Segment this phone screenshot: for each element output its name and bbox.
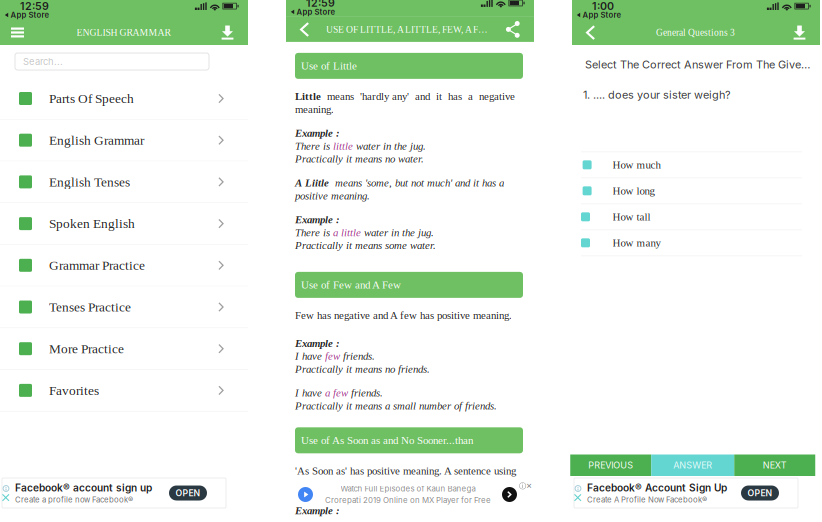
staticText: Little [295, 90, 321, 102]
staticText: OPEN [175, 488, 200, 498]
button[interactable]: More Practice [0, 328, 248, 370]
staticText: 12:59 [20, 0, 49, 12]
staticText: More Practice [49, 341, 124, 356]
staticText: App Store [582, 10, 621, 20]
staticText: Favorites [49, 383, 99, 398]
staticText: NEXT [763, 460, 787, 471]
staticText: Few has negative and A few has positive … [295, 309, 512, 321]
staticText: English Tenses [49, 174, 130, 189]
staticText: little [333, 140, 353, 152]
staticText: means 'some, but not much' and it has a [329, 177, 504, 189]
staticText: 1. .... does your sister weigh? [583, 88, 731, 101]
staticText: Example : [295, 337, 340, 349]
button[interactable]: Download [215, 20, 241, 45]
staticText: English Grammar [49, 133, 144, 148]
button[interactable]: Grammar Practice [0, 245, 248, 286]
button[interactable]: PREVIOUS [570, 454, 651, 476]
button[interactable]: English Tenses [0, 161, 248, 203]
staticText: Tenses Practice [49, 300, 131, 314]
staticText: water in the jug. [361, 227, 434, 239]
staticText: Use of Few and A Few [301, 279, 401, 291]
staticText: Search... [23, 56, 63, 67]
staticText: Spoken English [49, 216, 135, 231]
staticText: Practically it means no friends. [295, 363, 430, 375]
staticText: Practically it means some water. [295, 239, 436, 251]
staticText: Use of As Soon as and No Sooner...than [301, 434, 473, 446]
staticText: OPEN [747, 488, 772, 498]
staticText: How much [613, 159, 661, 171]
button[interactable]: Back [292, 17, 318, 42]
button[interactable]: Download [787, 20, 813, 45]
staticText: How many [613, 237, 661, 249]
staticText: USE OF LITTLE, A LITTLE, FEW, A FEW.... [326, 24, 493, 35]
button[interactable]: How long [572, 177, 820, 203]
staticText: Create A Profile Now Facebook® [587, 495, 707, 504]
staticText: 'As Soon as' has positive meaning. A sen… [295, 465, 516, 477]
staticText: ✕ [526, 482, 532, 490]
staticText: few [325, 350, 340, 362]
button[interactable]: ANSWER [651, 454, 734, 476]
staticText: meaning. [295, 103, 334, 115]
button[interactable]: Parts Of Speech [0, 78, 248, 120]
button[interactable]: Spoken English [0, 203, 248, 245]
staticText: Facebook® account sign up [15, 482, 152, 494]
staticText: 1:00 [592, 0, 614, 12]
staticText: 12:59 [306, 0, 335, 9]
button[interactable]: Search... [15, 53, 209, 70]
staticText: There is [295, 227, 333, 239]
staticText: I have [295, 387, 325, 399]
button[interactable]: NEXT [734, 454, 815, 476]
staticText: water in the jug. [353, 140, 426, 152]
staticText: Example : [295, 505, 340, 517]
staticText: ⓘ [519, 481, 526, 491]
staticText: Use of Little [301, 60, 357, 72]
button[interactable]: OPEN [169, 485, 207, 500]
staticText: PREVIOUS [588, 460, 633, 471]
button[interactable]: English Grammar [0, 120, 248, 161]
staticText: General Questions 3 [656, 27, 735, 38]
staticText: means 'hardly any' and it has a negative [321, 90, 515, 102]
button[interactable]: How tall [572, 203, 820, 229]
button[interactable]: Tenses Practice [0, 286, 248, 328]
staticText: Create a profile now Facebook® [15, 495, 133, 504]
staticText: How tall [613, 211, 651, 223]
button[interactable]: How many [572, 229, 820, 255]
staticText: I have [295, 350, 325, 362]
staticText: a few [325, 387, 348, 399]
button[interactable]: Back [578, 20, 604, 45]
staticText: friends. [340, 350, 375, 362]
staticText: Practically it means a small number of f… [295, 400, 497, 412]
staticText: There is [295, 140, 333, 152]
button[interactable]: Favorites [0, 370, 248, 412]
staticText: App Store [10, 10, 49, 20]
button[interactable]: Share [501, 17, 527, 42]
staticText: A Liitle [295, 177, 329, 189]
staticText: Grammar Practice [49, 258, 145, 273]
staticText: ENGLISH GRAMMAR [76, 27, 170, 38]
button[interactable]: How much [572, 151, 820, 177]
staticText: Crorepati 2019 Online on MX Player for F… [325, 495, 491, 505]
staticText: Watch Full Episodes of Kaun Banega [340, 484, 475, 493]
button[interactable]: OPEN [741, 485, 779, 500]
staticText: Example : [295, 214, 340, 226]
staticText: positive meaning. [295, 190, 370, 202]
staticText: How long [613, 185, 655, 197]
staticText: Example : [295, 127, 340, 139]
staticText: Facebook® Account Sign Up [587, 482, 727, 494]
staticText: Parts Of Speech [49, 91, 134, 106]
staticText: a little [333, 227, 361, 239]
staticText: friends. [348, 387, 383, 399]
staticText: Practically it means no water. [295, 153, 424, 165]
staticText: ANSWER [673, 460, 712, 471]
staticText: Select The Correct Answer From The Given… [585, 58, 812, 71]
staticText: App Store [296, 7, 335, 17]
button[interactable]: Menu [6, 20, 32, 45]
